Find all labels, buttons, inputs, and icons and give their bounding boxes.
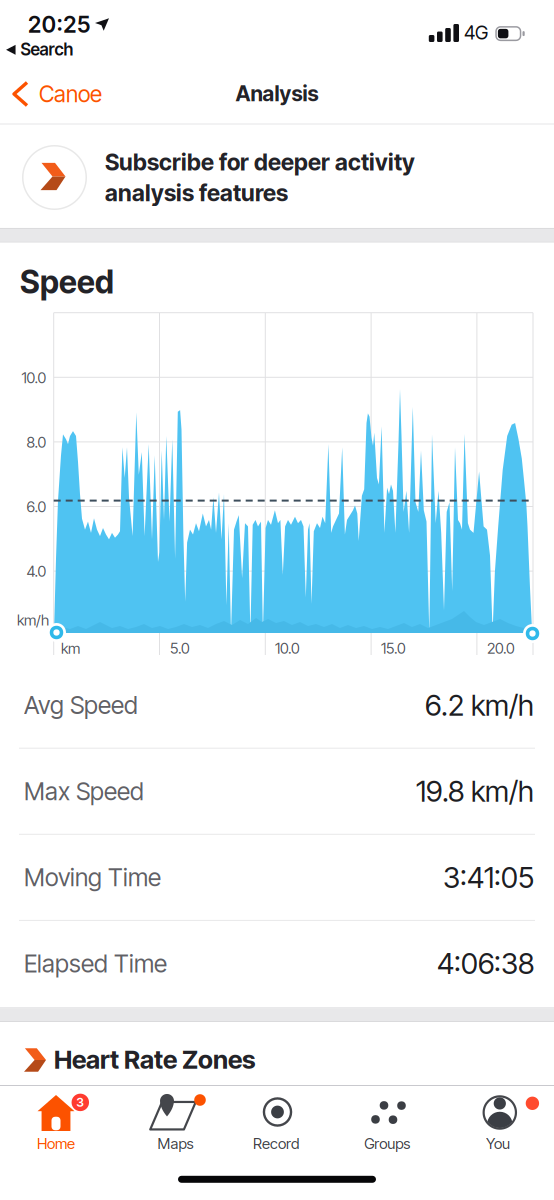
staticText: 6.2 km/h	[425, 688, 534, 723]
staticText: Canoe	[39, 80, 102, 108]
staticText: Heart Rate Zones	[54, 1044, 255, 1075]
staticText: 6.0	[27, 498, 47, 516]
staticText: 10.0	[22, 369, 47, 387]
button[interactable]: Heart Rate Zones	[0, 1030, 554, 1088]
staticText: Record	[253, 1134, 299, 1152]
staticText: Speed	[20, 263, 114, 301]
staticText: Moving Time	[24, 863, 161, 892]
button[interactable]: Maps	[124, 1089, 224, 1159]
staticText: Elapsed Time	[24, 949, 167, 978]
staticText: Groups	[364, 1134, 410, 1152]
staticText: km	[61, 639, 80, 657]
staticText: You	[486, 1134, 510, 1152]
staticText: 19.8 km/h	[416, 774, 534, 809]
staticText: 4:06:38	[437, 946, 534, 981]
staticText: 3:41:05	[443, 860, 534, 895]
staticText: 20.0	[487, 639, 515, 657]
staticText: Avg Speed	[24, 690, 138, 720]
staticText: Analysis	[235, 81, 318, 106]
staticText: analysis features	[105, 179, 288, 207]
staticText: Subscribe for deeper activity	[105, 148, 415, 176]
staticText: Search	[20, 39, 73, 60]
staticText: 4G	[464, 21, 488, 44]
staticText: 5.0	[170, 639, 190, 657]
staticText: 4.0	[27, 562, 47, 580]
staticText: 15.0	[381, 639, 406, 657]
button[interactable]: Subscribe for deeper activity	[0, 125, 554, 228]
button[interactable]: You	[449, 1089, 554, 1159]
staticText: 20:25	[28, 11, 90, 38]
staticText: 10.0	[275, 639, 300, 657]
staticText: km/h	[17, 611, 49, 629]
button[interactable]: Groups	[338, 1089, 438, 1159]
staticText: Home	[37, 1134, 75, 1152]
button[interactable]: Canoe	[14, 74, 134, 114]
staticText: 3	[76, 1095, 84, 1110]
button[interactable]: 3	[6, 1089, 106, 1159]
staticText: 8.0	[27, 433, 47, 451]
staticText: Max Speed	[24, 776, 144, 806]
button[interactable]: Record	[227, 1089, 327, 1159]
staticText: Maps	[157, 1134, 193, 1152]
